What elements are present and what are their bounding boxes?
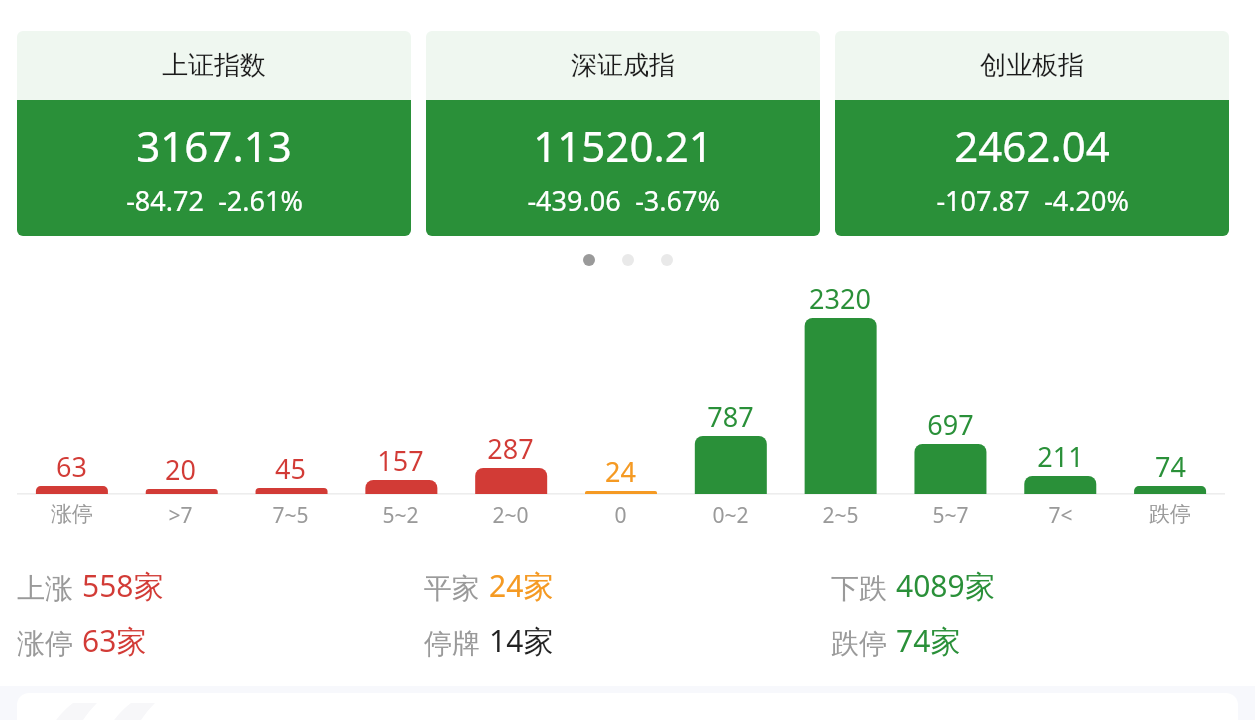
staticText: 跌停 [1149, 501, 1191, 527]
staticText: 7~5 [272, 501, 309, 530]
staticText: -2.61% [218, 182, 303, 219]
staticText: -4.20% [1044, 182, 1129, 219]
staticText: 2320 [809, 280, 871, 317]
staticText: >7 [168, 501, 193, 530]
staticText: 2~0 [492, 501, 529, 530]
staticText: 20 [165, 451, 196, 488]
staticText: 287 [487, 430, 534, 467]
staticText: 0 [614, 501, 627, 530]
button[interactable]: 上证指数 [17, 31, 411, 236]
staticText: 24 [605, 453, 636, 490]
staticText: 45 [275, 450, 306, 487]
staticText: -107.87 [936, 182, 1030, 219]
staticText: 涨停 [51, 501, 93, 527]
staticText: 14家 [489, 620, 554, 661]
staticText: 63家 [82, 620, 147, 661]
staticText: 2~5 [822, 501, 859, 530]
button[interactable]: 下跌 [831, 565, 1238, 661]
button[interactable]: 平家 [424, 565, 831, 661]
staticText: 2462.04 [954, 117, 1110, 174]
staticText: 787 [707, 398, 754, 435]
staticText: 697 [927, 406, 974, 443]
staticText: 3167.13 [136, 117, 292, 174]
staticText: 74 [1155, 448, 1186, 485]
staticText: 24家 [489, 565, 554, 606]
button[interactable]: 63 [0, 275, 1255, 535]
staticText: 7< [1048, 501, 1073, 530]
staticText: 跌停 [831, 626, 887, 661]
button[interactable]: 创业板指 [835, 31, 1229, 236]
staticText: 创业板指 [980, 49, 1084, 82]
staticText: -3.67% [635, 182, 720, 219]
staticText: 上涨 [17, 571, 73, 606]
staticText: 0~2 [712, 501, 749, 530]
staticText: 11520.21 [533, 117, 713, 174]
staticText: 涨停 [17, 626, 73, 661]
staticText: 211 [1037, 438, 1084, 475]
staticText: 上证指数 [162, 49, 266, 82]
staticText: -84.72 [126, 182, 204, 219]
staticText: 停牌 [424, 626, 480, 661]
button[interactable]: 深证成指 [426, 31, 820, 236]
staticText: 157 [377, 442, 424, 479]
staticText: -439.06 [527, 182, 621, 219]
staticText: 5~7 [932, 501, 969, 530]
staticText: 63 [56, 448, 87, 485]
staticText: 558家 [82, 565, 164, 606]
button[interactable]: 上涨 [17, 565, 424, 661]
staticText: 深证成指 [571, 49, 675, 82]
staticText: 4089家 [896, 565, 995, 606]
staticText: 下跌 [831, 571, 887, 606]
staticText: 平家 [424, 571, 480, 606]
staticText: 5~2 [382, 501, 419, 530]
staticText: 74家 [896, 620, 961, 661]
